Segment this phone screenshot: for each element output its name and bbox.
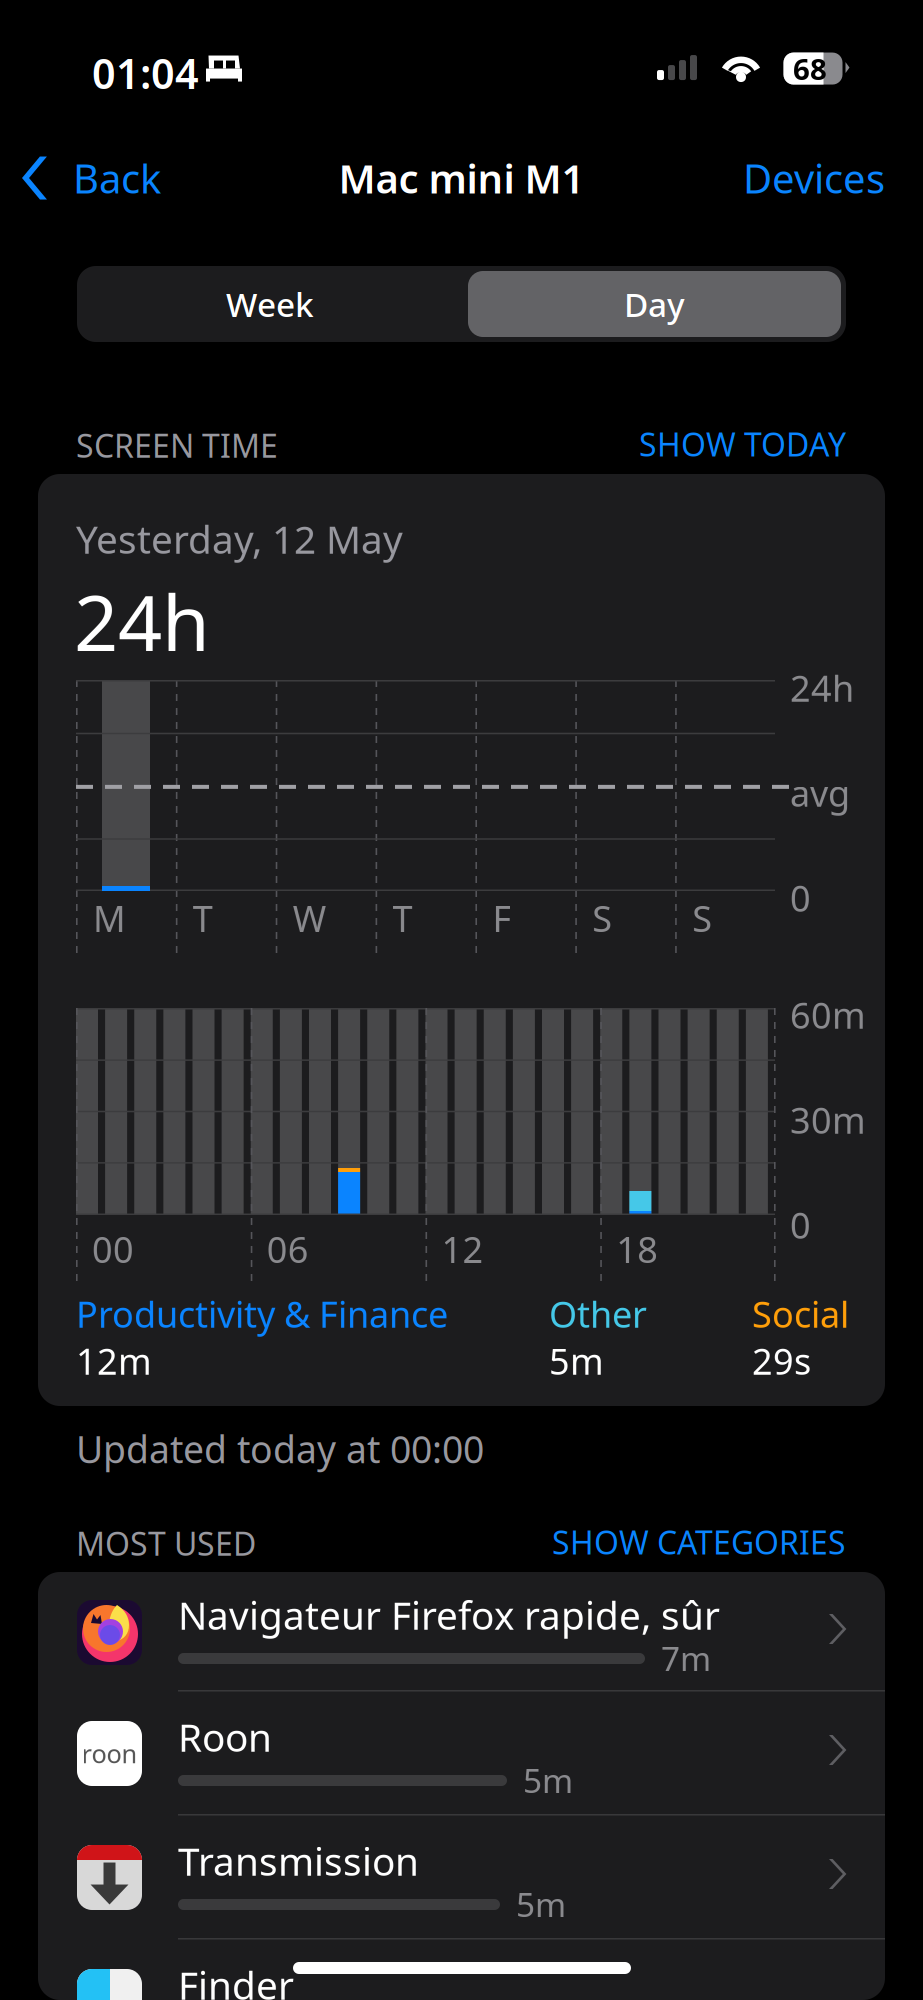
staticText: 30m bbox=[790, 1096, 866, 1144]
staticText: 12m bbox=[76, 1337, 152, 1385]
staticText: Navigateur Firefox rapide, sûr bbox=[178, 1589, 720, 1640]
staticText: Social bbox=[752, 1290, 849, 1338]
staticText: MOST USED bbox=[76, 1522, 256, 1564]
staticText: Yesterday, 12 May bbox=[76, 513, 403, 564]
button[interactable]: SHOW TODAY bbox=[636, 424, 846, 464]
staticText: SHOW CATEGORIES bbox=[552, 1521, 846, 1563]
staticText: Back bbox=[73, 151, 161, 204]
button[interactable]: Devices bbox=[727, 136, 923, 220]
staticText: Finder bbox=[178, 1959, 294, 2000]
staticText: T bbox=[393, 894, 413, 942]
button[interactable]: Week bbox=[77, 266, 463, 342]
staticText: avg bbox=[790, 769, 850, 817]
button[interactable]: Back bbox=[0, 136, 177, 220]
staticText: 24h bbox=[74, 570, 210, 673]
staticText: 5m bbox=[549, 1337, 604, 1385]
staticText: W bbox=[293, 894, 326, 942]
staticText: 18 bbox=[616, 1225, 658, 1273]
staticText: 01:04 bbox=[92, 46, 199, 100]
staticText: M bbox=[93, 894, 126, 942]
staticText: Productivity & Finance bbox=[76, 1290, 448, 1338]
staticText: Updated today at 00:00 bbox=[76, 1424, 484, 1474]
staticText: 12 bbox=[441, 1225, 483, 1273]
staticText: SHOW TODAY bbox=[639, 423, 846, 465]
staticText: S bbox=[592, 894, 612, 942]
button[interactable]: roon bbox=[38, 1691, 885, 1815]
button[interactable]: Day bbox=[463, 266, 846, 342]
staticText: 0 bbox=[790, 874, 811, 922]
staticText: 7m bbox=[661, 1636, 711, 1680]
staticText: 24h bbox=[790, 664, 854, 712]
staticText: 00 bbox=[92, 1225, 134, 1273]
button[interactable]: Finder bbox=[38, 1939, 885, 2000]
staticText: 60m bbox=[790, 991, 866, 1039]
staticText: 5m bbox=[523, 1758, 573, 1802]
button[interactable]: SHOW CATEGORIES bbox=[556, 1522, 846, 1562]
staticText: Mac mini M1 bbox=[338, 151, 584, 204]
staticText: roon bbox=[81, 1737, 137, 1770]
button[interactable]: Navigateur Firefox rapide, sûr bbox=[38, 1572, 885, 1690]
staticText: 68 bbox=[793, 49, 827, 88]
staticText: SCREEN TIME bbox=[76, 424, 278, 466]
button[interactable]: Transmission bbox=[38, 1815, 885, 1939]
staticText: 29s bbox=[752, 1337, 811, 1385]
staticText: Devices bbox=[743, 151, 885, 204]
staticText: Week bbox=[226, 282, 314, 326]
staticText: Roon bbox=[178, 1711, 272, 1762]
staticText: Transmission bbox=[178, 1835, 419, 1886]
staticText: 0 bbox=[790, 1201, 811, 1249]
staticText: F bbox=[492, 894, 511, 942]
staticText: S bbox=[692, 894, 712, 942]
staticText: 06 bbox=[267, 1225, 309, 1273]
staticText: Other bbox=[549, 1290, 647, 1338]
staticText: T bbox=[193, 894, 213, 942]
staticText: 5m bbox=[516, 1882, 566, 1926]
staticText: Day bbox=[624, 282, 685, 326]
